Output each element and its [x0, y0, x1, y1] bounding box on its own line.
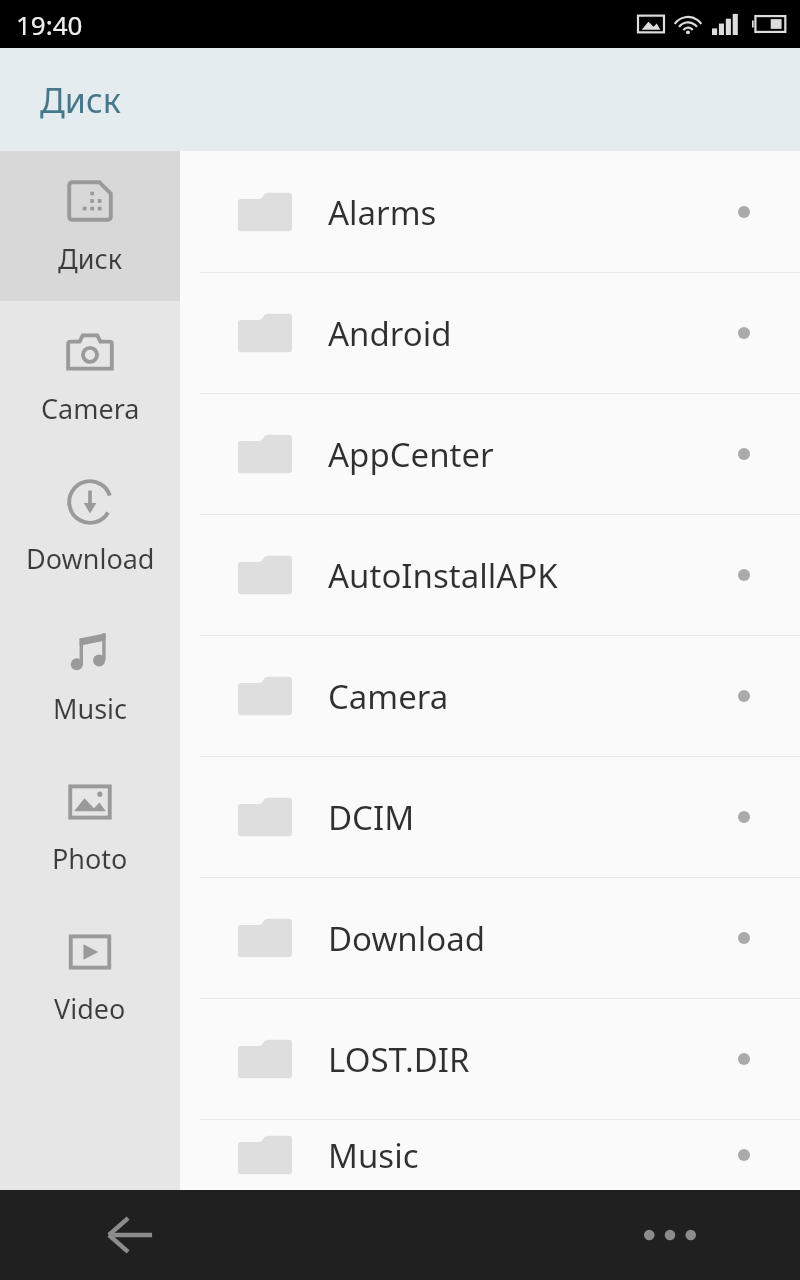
button[interactable]: AppCenter	[180, 393, 800, 514]
staticText: Alarms	[328, 190, 738, 235]
button[interactable]: Photo	[0, 751, 180, 901]
staticText: Photo	[52, 840, 128, 877]
staticText: 19:40	[16, 7, 83, 42]
staticText: Video	[54, 990, 126, 1027]
button[interactable]: Android	[180, 272, 800, 393]
staticText: AutoInstallAPK	[328, 553, 738, 598]
button[interactable]: Music	[180, 1119, 800, 1190]
button[interactable]: DCIM	[180, 756, 800, 877]
button[interactable]: More options	[630, 1195, 710, 1275]
staticText: LOST.DIR	[328, 1037, 738, 1082]
staticText: AppCenter	[328, 432, 738, 477]
button[interactable]: Back	[90, 1195, 170, 1275]
staticText: Music	[53, 690, 128, 727]
staticText: Диск	[40, 77, 121, 123]
button[interactable]: Download	[180, 877, 800, 998]
staticText: Camera	[328, 674, 738, 719]
button[interactable]: Download	[0, 451, 180, 601]
staticText: Camera	[41, 390, 140, 427]
staticText: DCIM	[328, 795, 738, 840]
button[interactable]: AutoInstallAPK	[180, 514, 800, 635]
staticText: Music	[328, 1133, 738, 1178]
staticText: Download	[328, 916, 738, 961]
button[interactable]: Video	[0, 901, 180, 1051]
staticText: Download	[26, 540, 155, 577]
button[interactable]: Alarms	[180, 151, 800, 272]
button[interactable]: Диск	[0, 151, 180, 301]
staticText: Диск	[58, 240, 123, 277]
staticText: Android	[328, 311, 738, 356]
button[interactable]: LOST.DIR	[180, 998, 800, 1119]
button[interactable]: Camera	[180, 635, 800, 756]
button[interactable]: Camera	[0, 301, 180, 451]
button[interactable]: Music	[0, 601, 180, 751]
